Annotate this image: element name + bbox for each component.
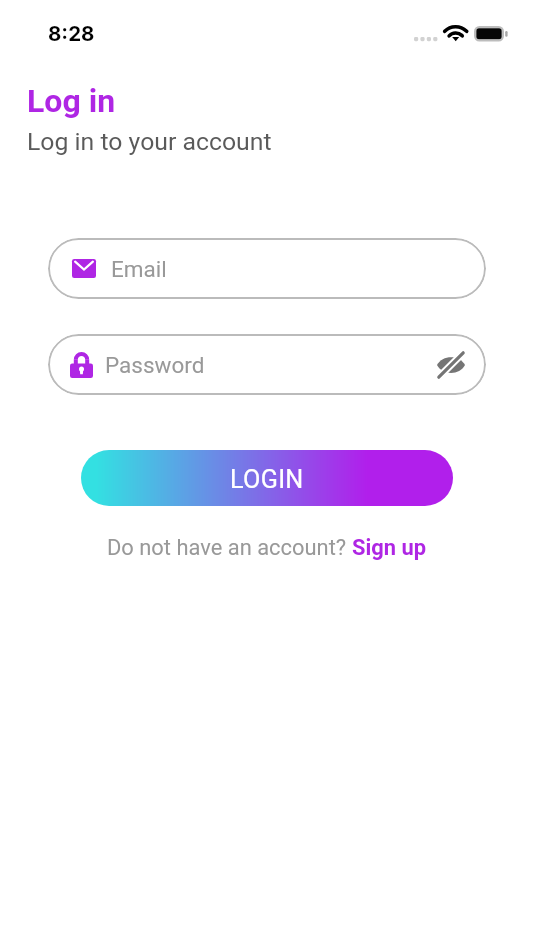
staticText: Log in <box>27 82 116 120</box>
staticText: Email <box>111 256 167 282</box>
button[interactable]: Sign up <box>352 535 427 561</box>
staticText: Sign up <box>352 535 427 561</box>
staticText: Log in to your account <box>27 127 272 156</box>
button[interactable]: Password <box>48 334 486 395</box>
staticText: LOGIN <box>230 465 304 495</box>
staticText: Password <box>105 352 205 378</box>
staticText: 8:28 <box>48 21 95 46</box>
staticText: Do not have an account? <box>107 535 352 561</box>
button[interactable]: Email <box>48 238 486 299</box>
button[interactable]: LOGIN <box>81 450 453 506</box>
button[interactable]: Show password <box>429 343 473 387</box>
